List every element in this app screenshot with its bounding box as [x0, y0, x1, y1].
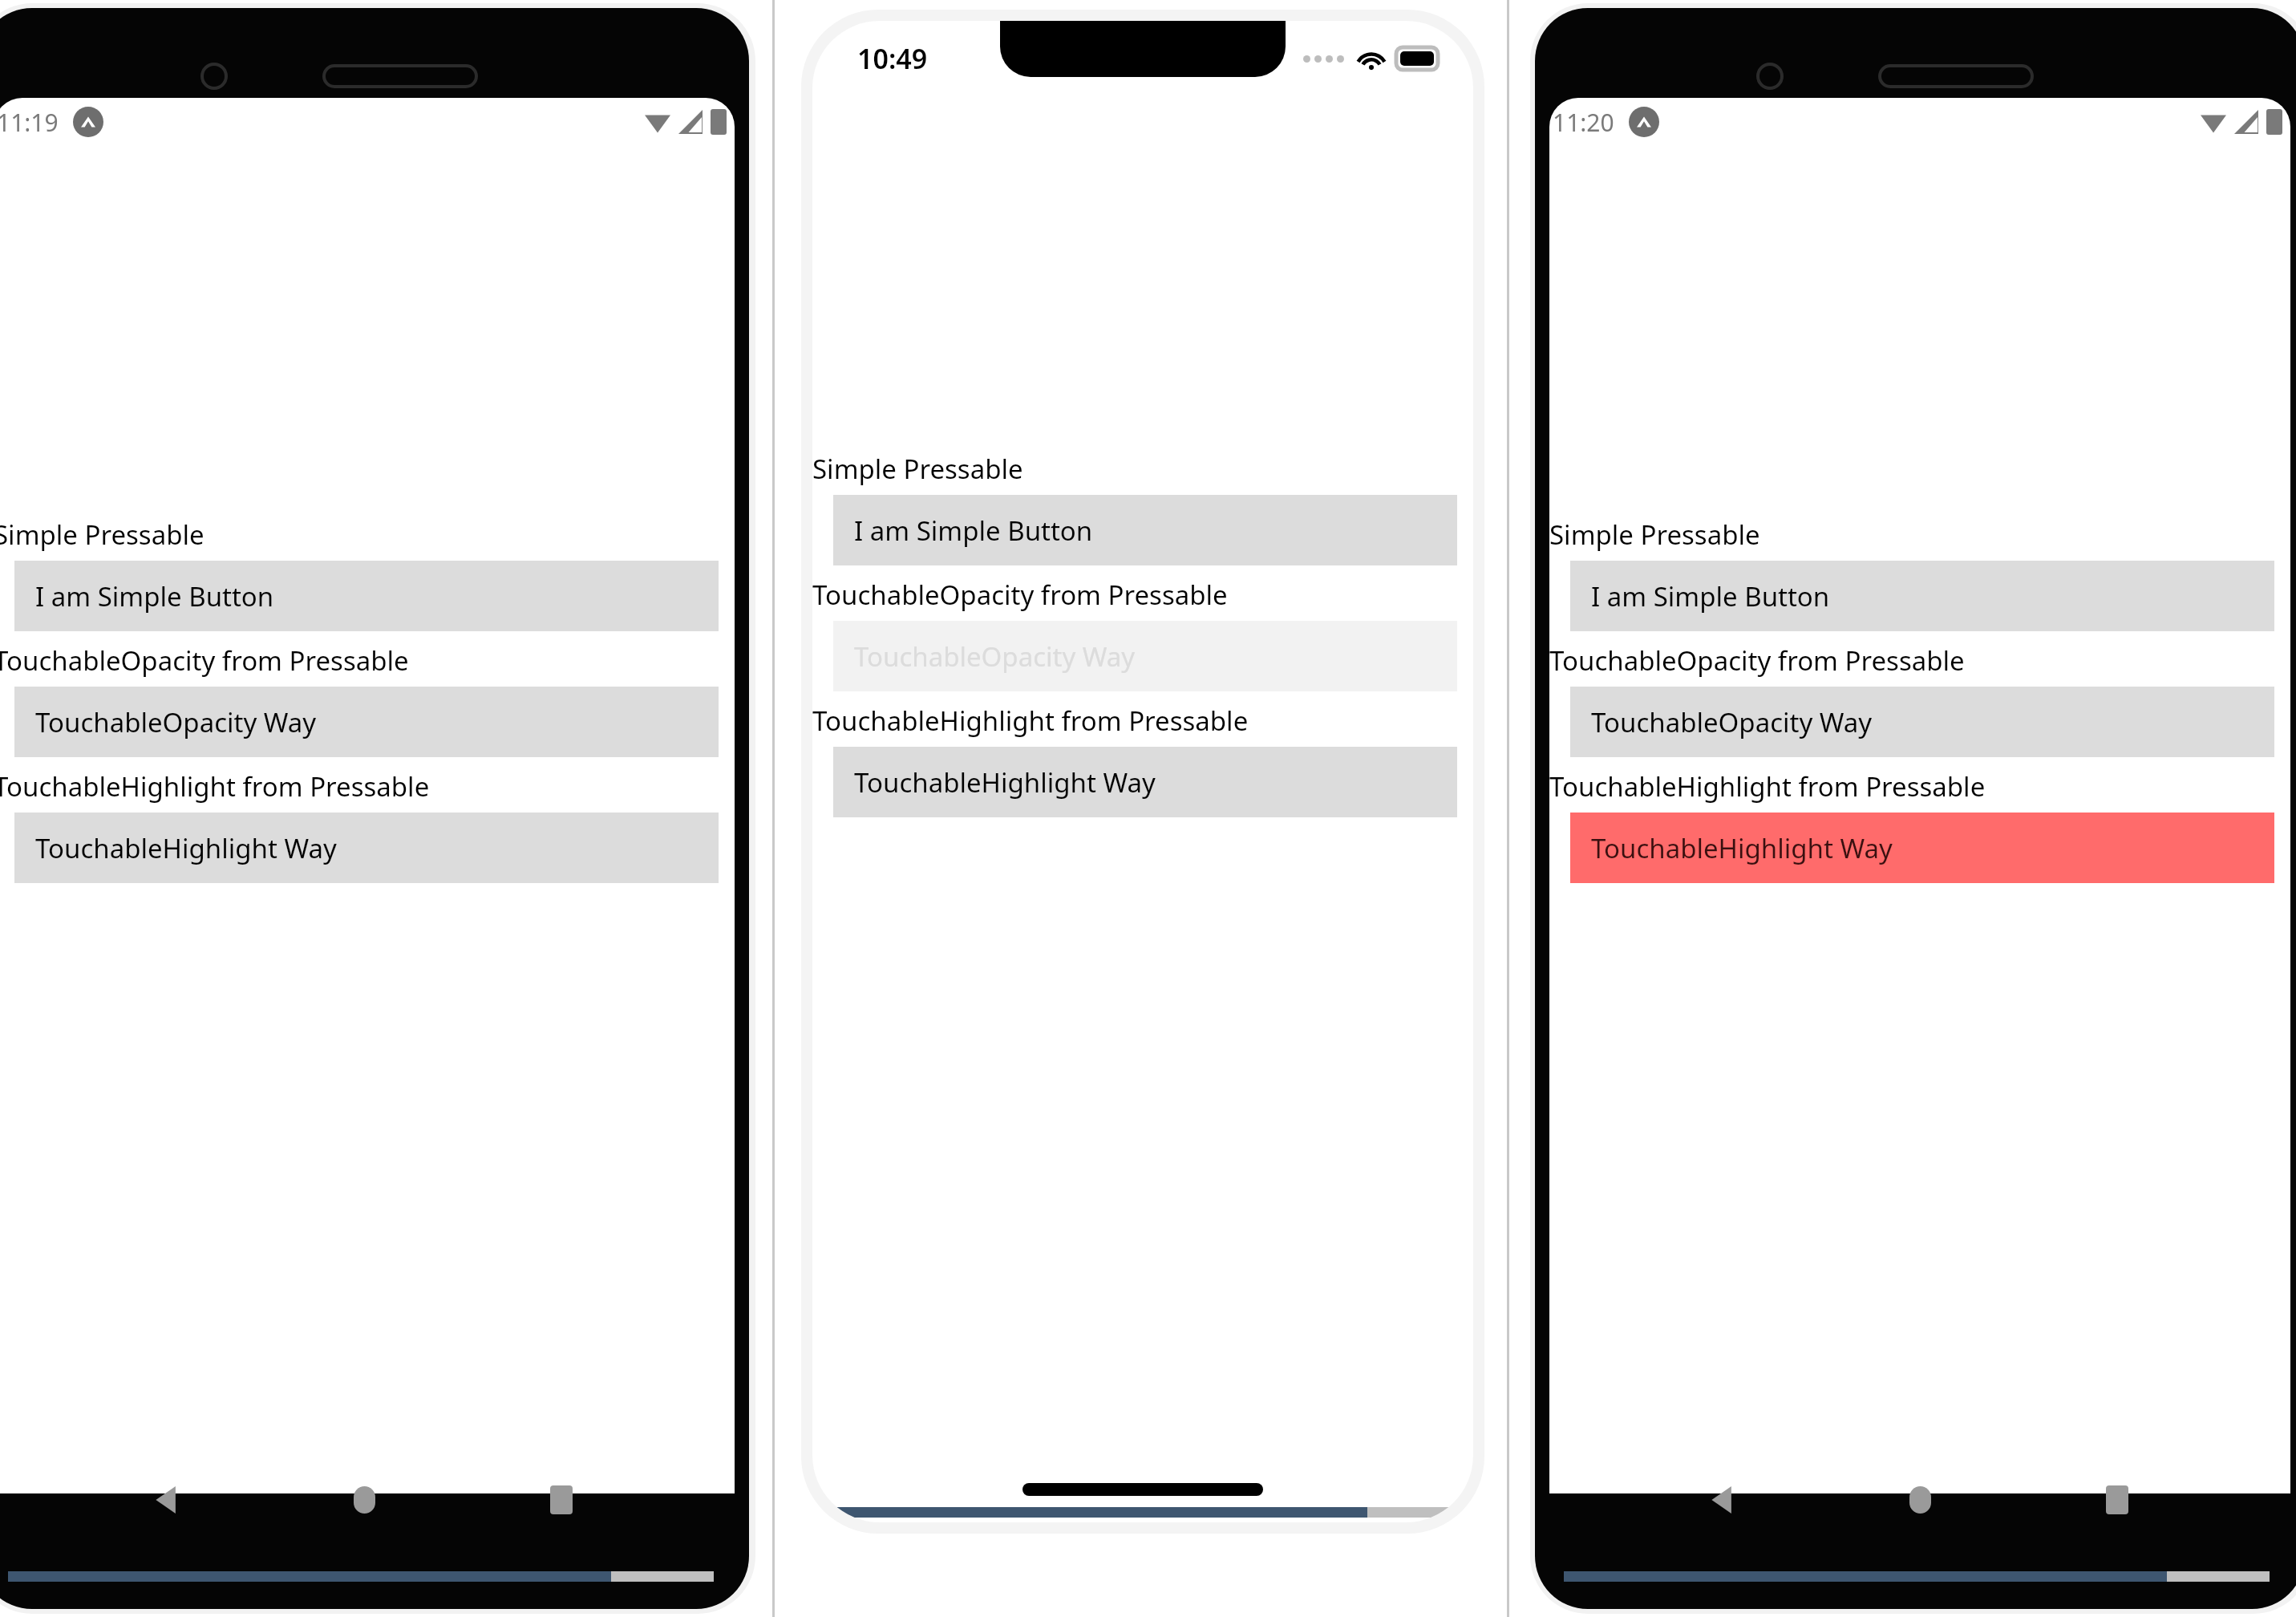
staticText: TouchableOpacity from Pressable	[812, 577, 1228, 613]
button[interactable]: TouchableOpacity Way	[14, 687, 719, 757]
staticText: TouchableHighlight from Pressable	[1549, 768, 1986, 804]
staticText: 10:49	[857, 40, 928, 77]
staticText: 11:20	[1553, 106, 1614, 139]
staticText: TouchableHighlight Way	[1591, 830, 1893, 866]
staticText: TouchableHighlight from Pressable	[812, 703, 1249, 739]
staticText: TouchableOpacity from Pressable	[1549, 642, 1965, 679]
button[interactable]: TouchableOpacity Way	[833, 621, 1457, 691]
staticText: TouchableOpacity Way	[854, 638, 1136, 675]
staticText: TouchableHighlight Way	[35, 830, 337, 866]
staticText: I am Simple Button	[1591, 578, 1830, 614]
staticText: TouchableOpacity Way	[1591, 704, 1873, 740]
staticText: TouchableOpacity from Pressable	[0, 642, 409, 679]
button[interactable]: TouchableOpacity Way	[1570, 687, 2274, 757]
button[interactable]: Back	[140, 1473, 194, 1527]
button[interactable]: Recent apps	[2090, 1473, 2144, 1527]
staticText: Simple Pressable	[812, 451, 1023, 487]
button[interactable]: Home	[1893, 1473, 1947, 1527]
button[interactable]: I am Simple Button	[1570, 561, 2274, 631]
staticText: TouchableOpacity Way	[35, 704, 317, 740]
staticText: 11:19	[0, 106, 59, 139]
button[interactable]: Home	[337, 1473, 391, 1527]
button[interactable]: TouchableHighlight Way	[1570, 813, 2274, 883]
button[interactable]: TouchableHighlight Way	[833, 747, 1457, 817]
button[interactable]: Recent apps	[534, 1473, 589, 1527]
button[interactable]: I am Simple Button	[14, 561, 719, 631]
staticText: Simple Pressable	[0, 517, 204, 553]
staticText: TouchableHighlight from Pressable	[0, 768, 430, 804]
staticText: I am Simple Button	[35, 578, 274, 614]
staticText: TouchableHighlight Way	[854, 764, 1156, 800]
button[interactable]: I am Simple Button	[833, 495, 1457, 565]
staticText: Simple Pressable	[1549, 517, 1760, 553]
staticText: I am Simple Button	[854, 513, 1093, 549]
button[interactable]: Back	[1695, 1473, 1750, 1527]
button[interactable]: TouchableHighlight Way	[14, 813, 719, 883]
